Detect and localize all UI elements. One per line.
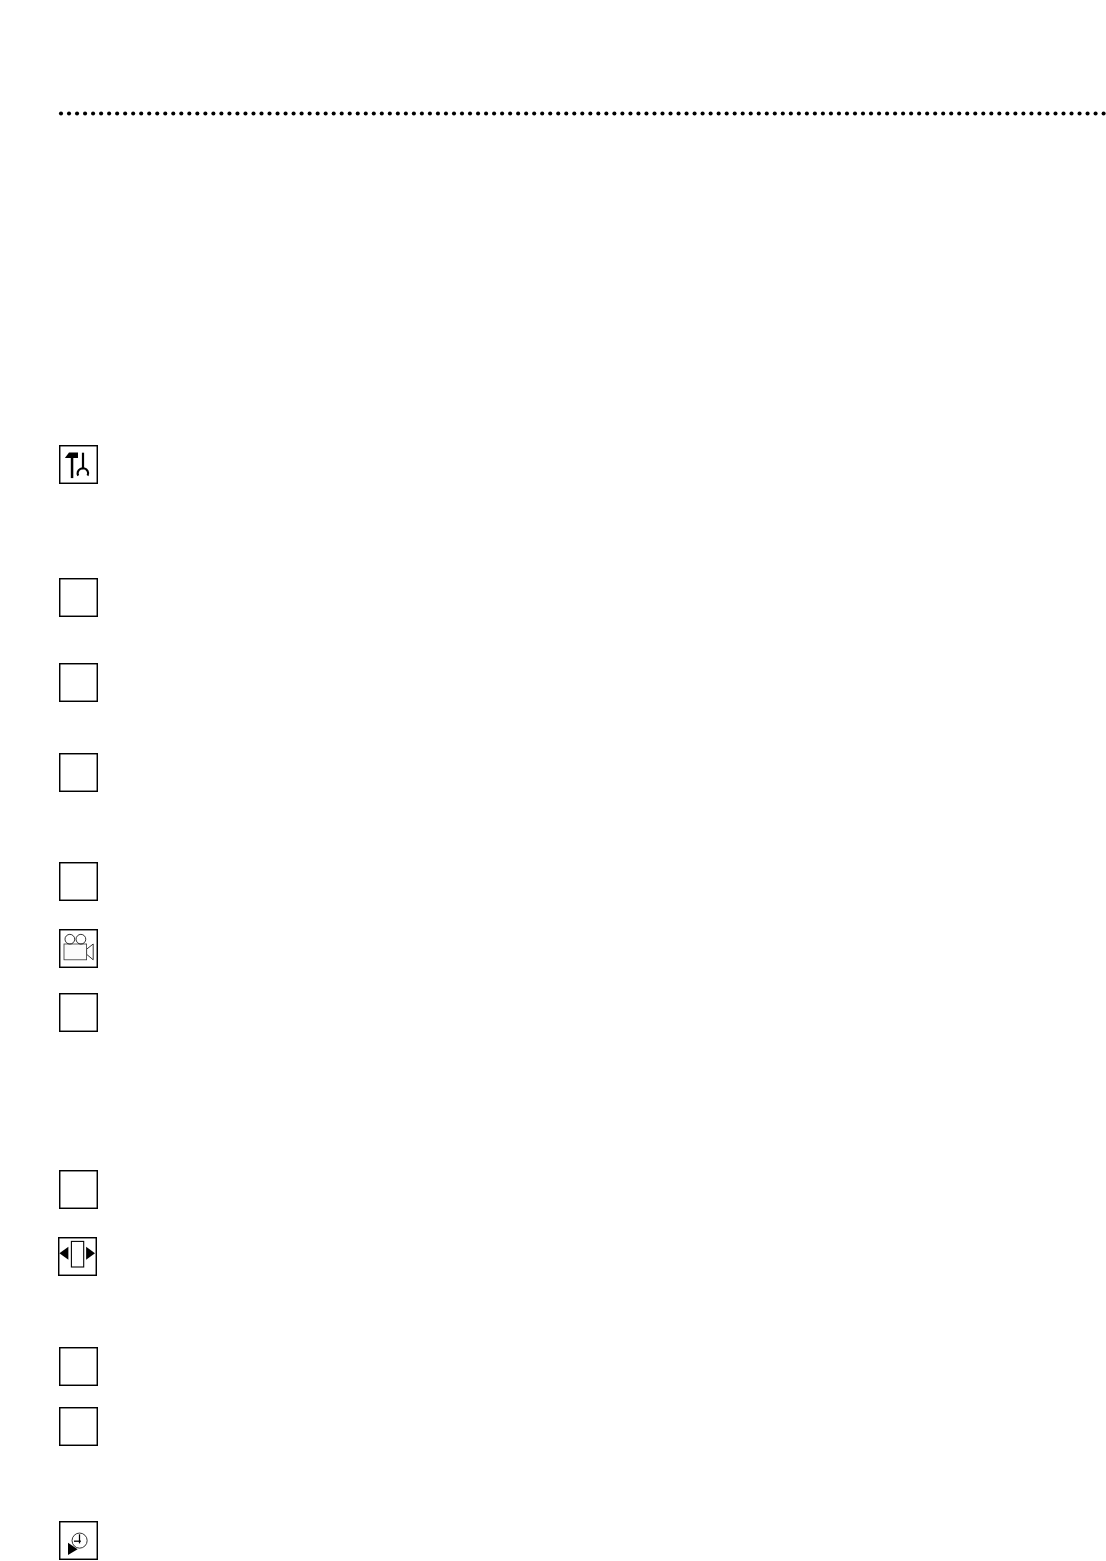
button[interactable]: Item 11 bbox=[59, 1407, 98, 1446]
button[interactable]: Item 8 bbox=[0, 1170, 1106, 1209]
button[interactable]: Item 2 bbox=[59, 578, 98, 617]
button[interactable]: Video bbox=[59, 929, 98, 968]
button[interactable]: Item 5 bbox=[0, 862, 1106, 901]
button[interactable]: Item 5 bbox=[59, 862, 98, 901]
button[interactable]: Resize bbox=[0, 1237, 1106, 1276]
button[interactable]: Recent bbox=[0, 1521, 1106, 1560]
button[interactable]: Item 10 bbox=[0, 1347, 1106, 1386]
button[interactable]: Item 4 bbox=[0, 753, 1106, 792]
button[interactable]: Item 7 bbox=[59, 993, 98, 1032]
button[interactable]: Item 2 bbox=[0, 578, 1106, 617]
button[interactable]: Item 7 bbox=[0, 993, 1106, 1032]
button[interactable]: Item 4 bbox=[59, 753, 98, 792]
button[interactable]: Item 8 bbox=[59, 1170, 98, 1209]
button[interactable]: Tools bbox=[0, 445, 1106, 484]
button[interactable]: Recent bbox=[59, 1521, 98, 1560]
button[interactable]: Item 11 bbox=[0, 1407, 1106, 1446]
button[interactable]: Tools bbox=[59, 445, 98, 484]
button[interactable]: Item 3 bbox=[0, 663, 1106, 702]
button[interactable]: Video bbox=[0, 929, 1106, 968]
button[interactable]: Item 3 bbox=[59, 663, 98, 702]
button[interactable]: Resize bbox=[58, 1237, 97, 1276]
button[interactable]: Item 10 bbox=[59, 1347, 98, 1386]
